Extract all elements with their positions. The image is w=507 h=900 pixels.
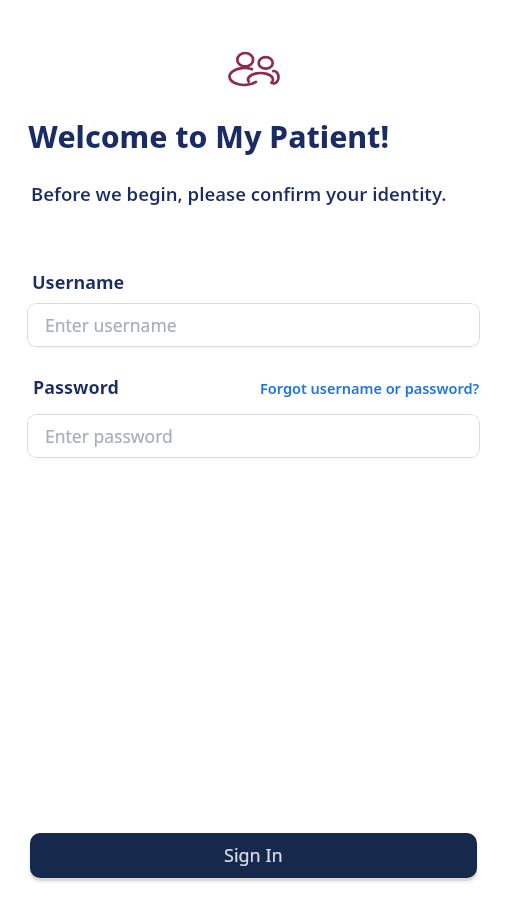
button[interactable]: Sign In <box>30 833 477 878</box>
staticText: Enter username <box>45 313 177 337</box>
button[interactable]: Forgot username or password? <box>260 378 480 398</box>
staticText: Welcome to My Patient! <box>28 116 390 157</box>
staticText: Before we begin, please confirm your ide… <box>31 181 447 206</box>
staticText: Password <box>33 375 119 400</box>
staticText: Username <box>32 270 125 295</box>
button[interactable]: Enter username <box>27 303 480 347</box>
staticText: Forgot username or password? <box>260 378 480 398</box>
staticText: Enter password <box>45 424 173 448</box>
staticText: Sign In <box>224 843 283 868</box>
button[interactable]: Enter password <box>27 414 480 458</box>
